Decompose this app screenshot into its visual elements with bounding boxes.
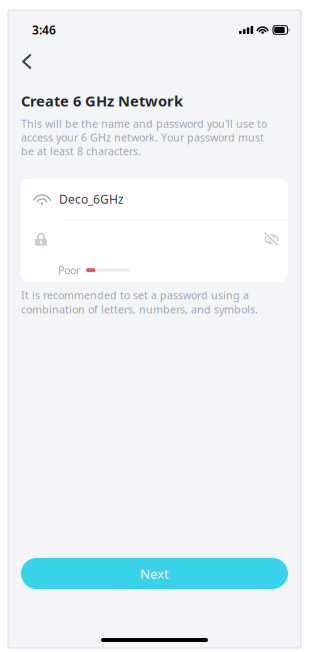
staticText: 3:46 — [32, 22, 56, 38]
button[interactable]: Show password — [259, 228, 284, 250]
button[interactable]: Next — [21, 558, 288, 589]
staticText: Deco_6GHz — [59, 191, 124, 207]
staticText: Next — [140, 565, 169, 582]
staticText: This will be the name and password you'l… — [21, 116, 267, 158]
staticText: Create 6 GHz Network — [21, 91, 183, 110]
staticText: It is recommended to set a password usin… — [21, 288, 258, 316]
staticText: Poor — [58, 263, 80, 277]
button[interactable]: Back — [8, 50, 42, 75]
